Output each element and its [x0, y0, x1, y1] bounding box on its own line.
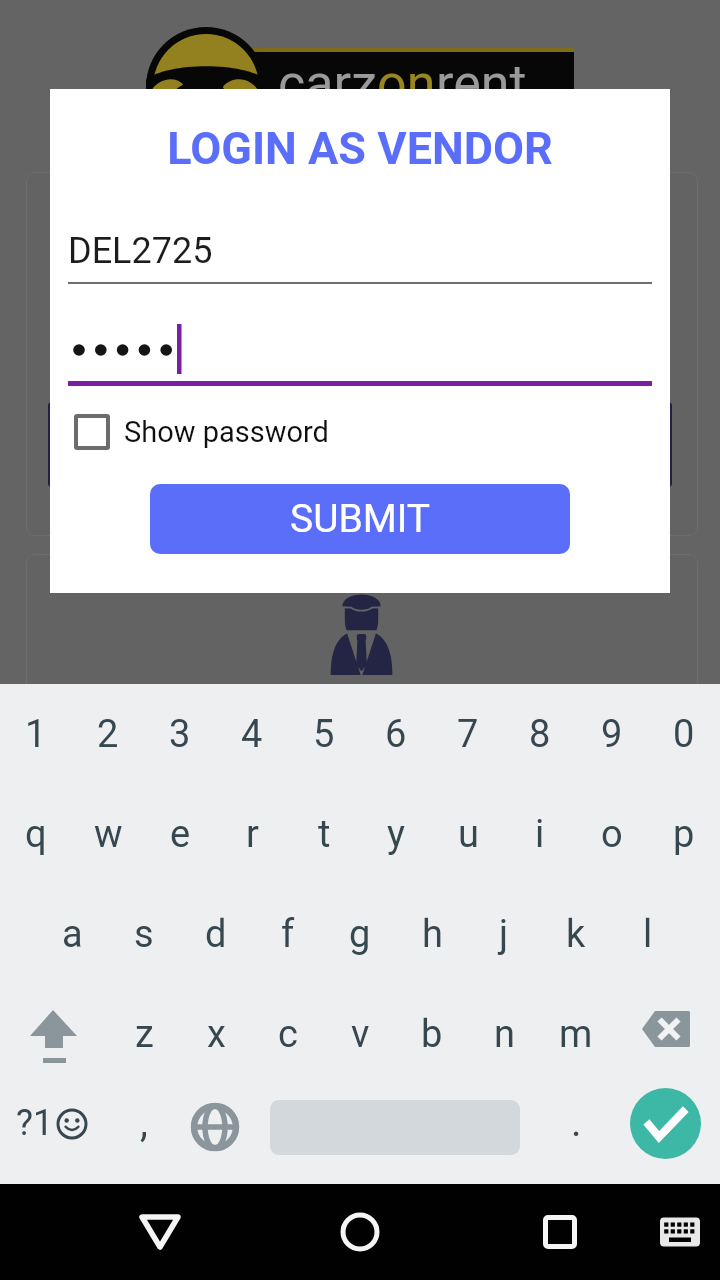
staticText: l [643, 912, 653, 957]
staticText: x [207, 1012, 226, 1057]
staticText: e [170, 812, 191, 857]
button[interactable]: e [144, 784, 216, 884]
button[interactable]: w [72, 784, 144, 884]
staticText: s [134, 912, 154, 957]
button[interactable]: k [540, 884, 612, 984]
button[interactable]: z [108, 984, 180, 1084]
staticText: 0 [673, 712, 695, 757]
staticText: q [25, 812, 47, 857]
button[interactable]: Enter [630, 1088, 701, 1159]
staticText: Show password [124, 415, 329, 449]
button[interactable]: Change language [180, 1087, 250, 1167]
staticText: w [94, 812, 123, 857]
staticText: u [458, 812, 479, 857]
staticText: 7 [457, 712, 479, 757]
staticText: 6 [385, 712, 407, 757]
button[interactable]: 0 [648, 684, 720, 784]
button[interactable]: 1 [0, 684, 72, 784]
button[interactable]: . [540, 1082, 612, 1162]
button[interactable]: Back [110, 1184, 210, 1280]
staticText: b [421, 1012, 443, 1057]
button[interactable]: l [612, 884, 684, 984]
staticText: DEL2725 [68, 230, 213, 272]
staticText: g [349, 912, 371, 957]
button[interactable]: r [216, 784, 288, 884]
staticText: c [278, 1012, 298, 1057]
staticText: h [422, 912, 443, 957]
button[interactable]: x [180, 984, 252, 1084]
button[interactable]: 4 [216, 684, 288, 784]
staticText: y [387, 812, 405, 857]
staticText: 3 [169, 712, 191, 757]
staticText: t [318, 812, 331, 857]
button[interactable]: q [0, 784, 72, 884]
button[interactable]: Home [310, 1184, 410, 1280]
staticText: o [601, 812, 623, 857]
button[interactable]: h [396, 884, 468, 984]
button[interactable]: 9 [576, 684, 648, 784]
button[interactable]: , [108, 1082, 180, 1162]
button[interactable]: Shift [18, 984, 90, 1084]
button[interactable]: c [252, 984, 324, 1084]
staticText: 8 [529, 712, 551, 757]
staticText: 4 [241, 712, 263, 757]
staticText: 5 [313, 712, 335, 757]
button[interactable]: f [252, 884, 324, 984]
staticText: z [135, 1012, 154, 1057]
button[interactable]: t [288, 784, 360, 884]
button[interactable]: d [180, 884, 252, 984]
button[interactable]: a [36, 884, 108, 984]
staticText: 1 [25, 712, 47, 757]
button[interactable]: p [648, 784, 720, 884]
button[interactable]: n [468, 984, 540, 1084]
button[interactable]: m [540, 984, 612, 1084]
staticText: ?1 [16, 1102, 54, 1144]
button[interactable]: 3 [144, 684, 216, 784]
button[interactable]: g [324, 884, 396, 984]
staticText: 2 [97, 712, 119, 757]
staticText: j [499, 912, 509, 957]
button[interactable]: s [108, 884, 180, 984]
button[interactable]: 7 [432, 684, 504, 784]
staticText: , [140, 1099, 148, 1146]
staticText: i [535, 812, 545, 857]
staticText: . [571, 1099, 582, 1146]
button[interactable]: 2 [72, 684, 144, 784]
staticText: p [673, 812, 695, 857]
staticText: on [377, 53, 436, 114]
staticText: m [559, 1012, 593, 1057]
button[interactable]: 5 [288, 684, 360, 784]
button[interactable]: o [576, 784, 648, 884]
button[interactable]: 6 [360, 684, 432, 784]
button[interactable]: Backspace [630, 984, 702, 1084]
staticText: carz [278, 53, 377, 114]
button[interactable]: u [432, 784, 504, 884]
button[interactable]: SUBMIT [150, 484, 570, 554]
button[interactable]: j [468, 884, 540, 984]
staticText: SUBMIT [290, 496, 431, 542]
button[interactable]: b [396, 984, 468, 1084]
button[interactable]: 8 [504, 684, 576, 784]
button[interactable]: y [360, 784, 432, 884]
button[interactable]: Recent apps [510, 1184, 610, 1280]
staticText: v [351, 1012, 370, 1057]
button[interactable]: v [324, 984, 396, 1084]
staticText: rent [436, 53, 527, 114]
staticText: d [205, 912, 227, 957]
staticText: LOGIN AS VENDOR [50, 122, 670, 175]
button[interactable]: Symbols and emoji [8, 1082, 100, 1162]
staticText: r [246, 812, 259, 857]
staticText: a [62, 912, 83, 957]
button[interactable]: Show password [68, 408, 388, 456]
staticText: f [281, 912, 295, 957]
staticText: n [494, 1012, 515, 1057]
button[interactable]: i [504, 784, 576, 884]
button[interactable]: Switch keyboard [640, 1184, 720, 1280]
staticText: k [566, 912, 586, 957]
staticText: 9 [601, 712, 623, 757]
